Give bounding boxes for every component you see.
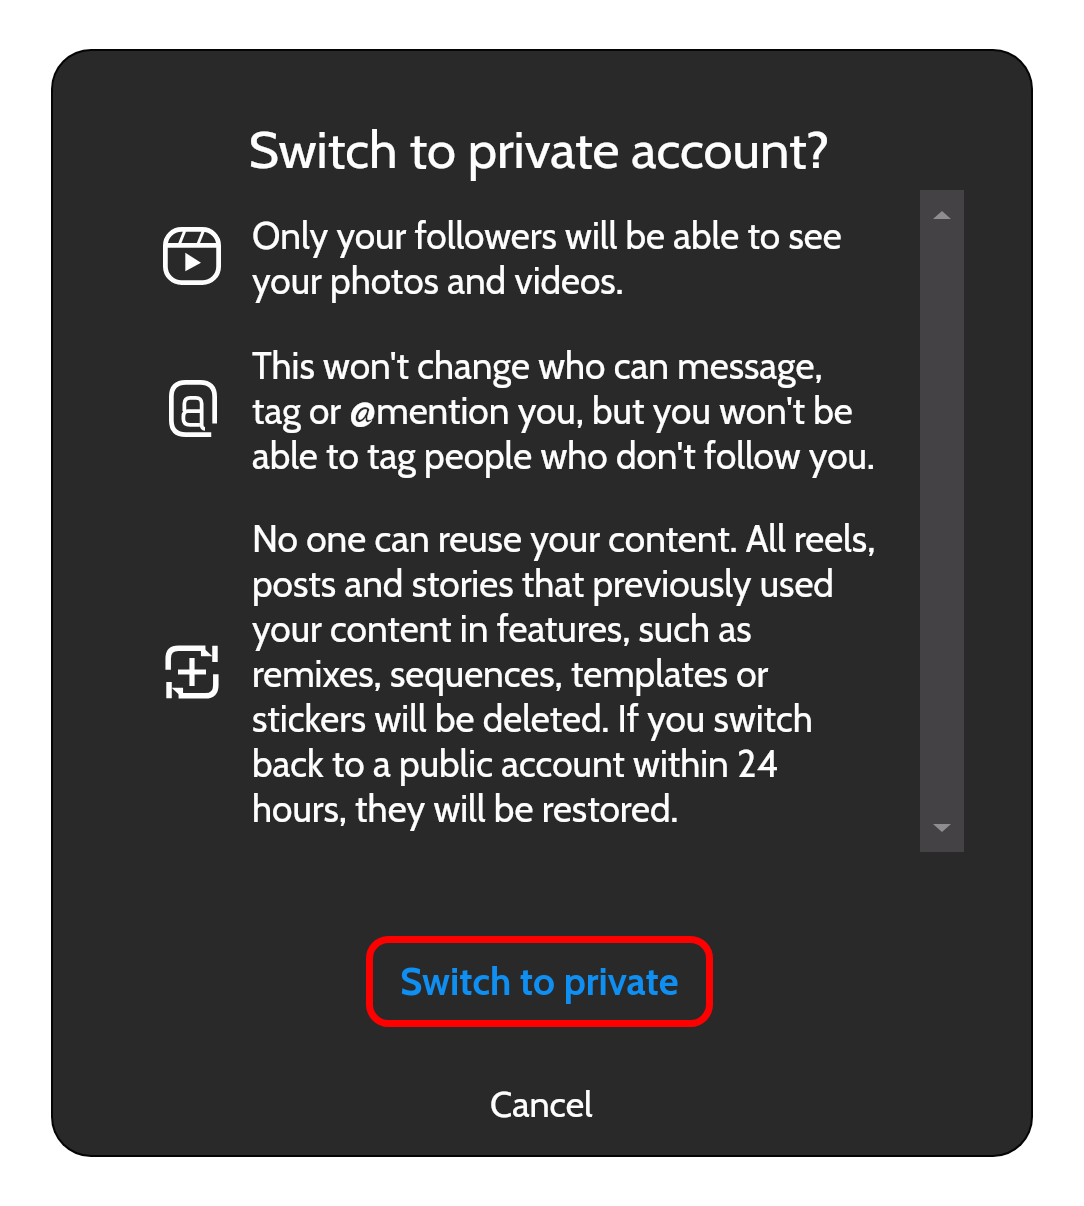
other: Mentions — [169, 380, 217, 446]
other: Scroll — [920, 190, 964, 852]
staticText: This won't change who can message, tag o… — [252, 343, 875, 478]
staticText: Cancel — [490, 1082, 593, 1126]
staticText: No one can reuse your content. All reels… — [252, 516, 876, 831]
staticText: Switch to private — [400, 958, 679, 1005]
other: Reels — [163, 227, 221, 285]
button[interactable]: Cancel — [53, 1064, 1030, 1144]
staticText: Switch to private account? — [53, 117, 1028, 181]
other: Remix — [164, 644, 220, 700]
staticText: Only your followers will be able to see … — [252, 213, 842, 303]
button[interactable]: Switch to private — [366, 936, 713, 1027]
